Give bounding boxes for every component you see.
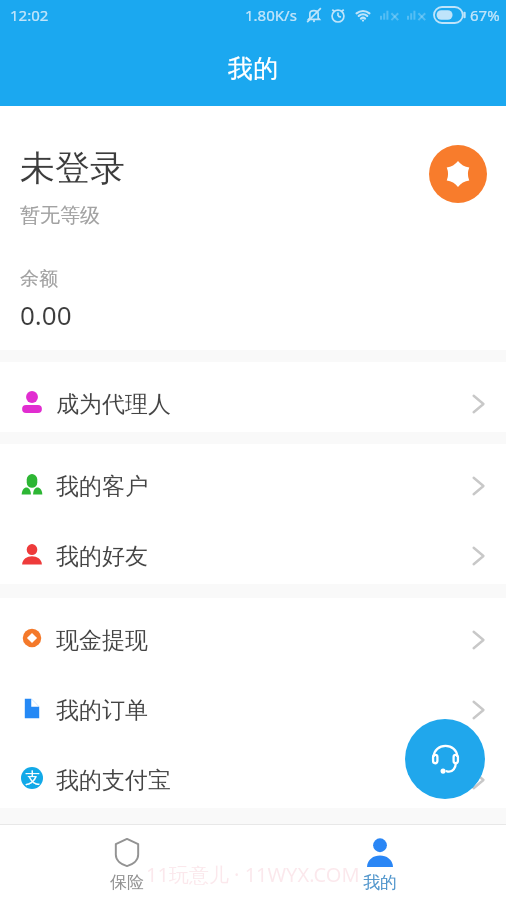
button[interactable]: 我的好友 xyxy=(0,514,506,584)
staticText: 我的订单 xyxy=(56,696,148,725)
staticText: 成为代理人 xyxy=(56,390,171,419)
staticText: 12:02 xyxy=(10,5,49,25)
staticText: 余额 xyxy=(20,267,58,291)
button[interactable]: 我的客户 xyxy=(0,444,506,514)
button[interactable]: Profile avatar xyxy=(429,145,487,203)
staticText: 11玩意儿 · 11WYX.COM xyxy=(146,861,360,888)
staticText: 保险 xyxy=(110,872,144,893)
button[interactable]: 保险 xyxy=(0,825,253,900)
staticText: 暂无等级 xyxy=(20,203,100,228)
staticText: 现金提现 xyxy=(56,626,148,655)
button[interactable]: 我的 xyxy=(253,825,506,900)
button[interactable]: 支 xyxy=(0,738,506,808)
staticText: 我的 xyxy=(363,872,397,893)
button[interactable]: 现金提现 xyxy=(0,598,506,668)
staticText: 我的好友 xyxy=(56,542,148,571)
staticText: 支 xyxy=(25,769,40,788)
staticText: 未登录 xyxy=(20,146,125,190)
button[interactable]: 成为代理人 xyxy=(0,362,506,432)
staticText: 0.00 xyxy=(20,297,72,332)
staticText: 我的支付宝 xyxy=(56,766,171,795)
staticText: 1.80K/s xyxy=(245,5,297,25)
staticText: 我的客户 xyxy=(56,472,148,501)
button[interactable]: 我的订单 xyxy=(0,668,506,738)
staticText: 我的 xyxy=(228,53,278,84)
staticText: 67% xyxy=(470,5,500,25)
button[interactable]: Customer service xyxy=(405,719,485,799)
